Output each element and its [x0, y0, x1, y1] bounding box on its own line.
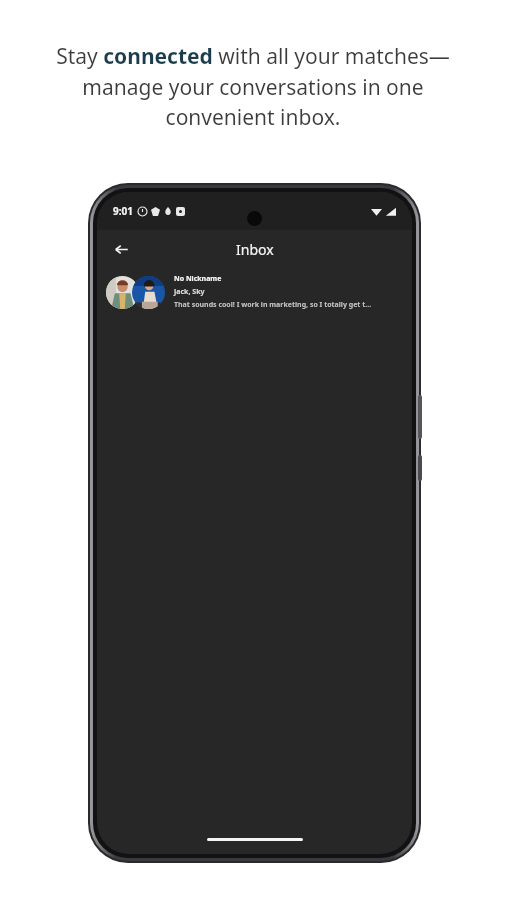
staticText: That sounds cool! I work in marketing, s…	[174, 300, 372, 310]
button[interactable]: No Nickname	[97, 268, 412, 316]
button[interactable]: Back	[105, 233, 137, 265]
staticText: No Nickname	[174, 274, 222, 284]
staticText: Stay connected with all your matches—man…	[28, 42, 478, 131]
staticText: Jack, Sky	[174, 287, 205, 297]
staticText: 9:01	[113, 204, 133, 218]
staticText: Inbox	[236, 240, 274, 259]
